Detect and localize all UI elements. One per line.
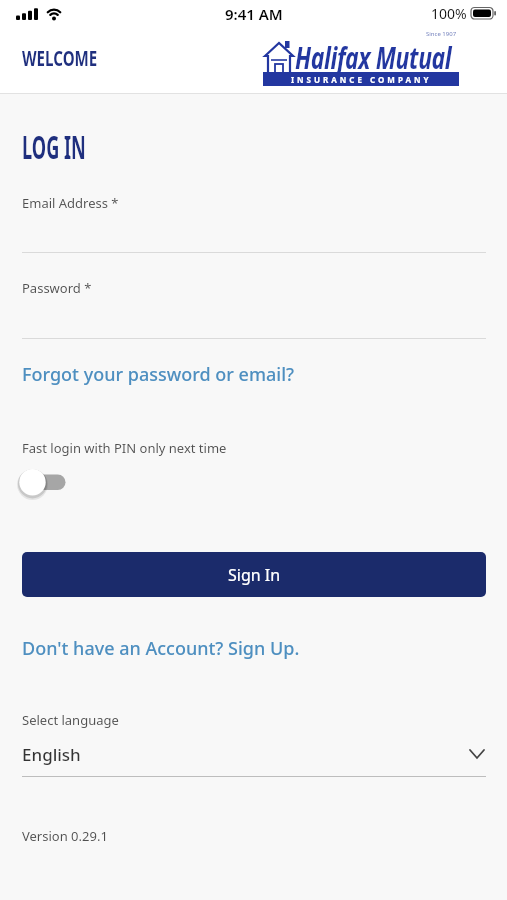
staticText: Select language bbox=[22, 711, 119, 729]
staticText: 100% bbox=[431, 4, 467, 23]
staticText: Since 1907 bbox=[426, 30, 457, 38]
button[interactable]: English bbox=[22, 735, 486, 773]
staticText: Sign In bbox=[228, 564, 281, 586]
staticText: Version 0.29.1 bbox=[22, 827, 108, 845]
staticText: Email Address * bbox=[22, 194, 119, 212]
staticText: Fast login with PIN only next time bbox=[22, 439, 227, 457]
staticText: Password * bbox=[22, 279, 92, 297]
button[interactable] bbox=[15, 466, 67, 498]
staticText: Forgot your password or email? bbox=[22, 362, 295, 387]
staticText: Don't have an Account? Sign Up. bbox=[22, 636, 300, 661]
staticText: LOG IN bbox=[22, 124, 86, 169]
staticText: WELCOME bbox=[22, 44, 98, 73]
button[interactable]: Don't have an Account? Sign Up. bbox=[18, 632, 304, 665]
button[interactable]: Sign In bbox=[22, 552, 486, 597]
staticText: 9:41 AM bbox=[225, 4, 283, 24]
staticText: INSURANCE COMPANY bbox=[291, 74, 432, 85]
button[interactable]: Forgot your password or email? bbox=[18, 358, 299, 391]
staticText: Halifax Mutual bbox=[295, 36, 416, 78]
staticText: English bbox=[22, 743, 81, 766]
